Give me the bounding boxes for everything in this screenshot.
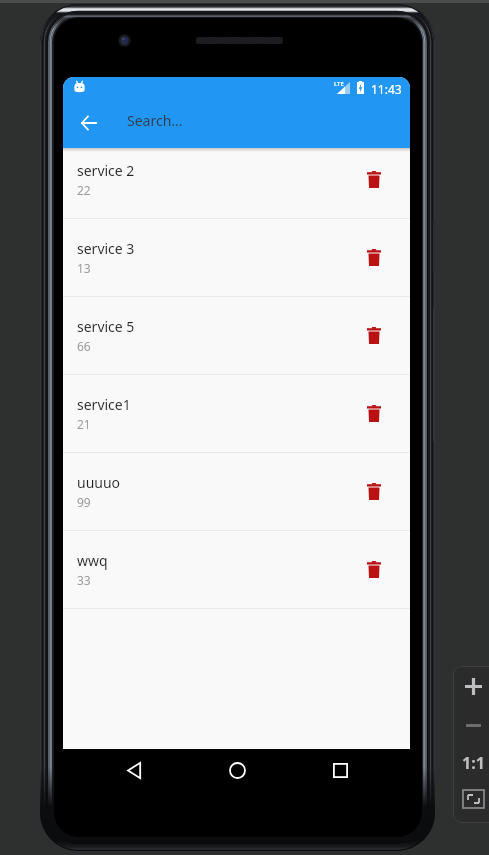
staticText: LTE — [334, 80, 344, 88]
staticText: 33 — [77, 572, 91, 588]
staticText: service 3 — [77, 239, 135, 258]
button[interactable]: Delete — [356, 162, 392, 198]
button[interactable]: Delete — [356, 318, 392, 354]
button[interactable]: Delete — [356, 240, 392, 276]
button[interactable]: wwq — [63, 531, 410, 608]
button[interactable]: Zoom in — [459, 672, 488, 701]
staticText: 13 — [77, 260, 91, 276]
button[interactable]: service 5 — [63, 297, 410, 374]
button[interactable]: Delete — [356, 474, 392, 510]
staticText: Search... — [127, 111, 183, 129]
button[interactable]: service 2 — [63, 148, 410, 218]
button[interactable]: Fit to screen — [459, 784, 488, 813]
button[interactable]: Recent apps — [322, 752, 358, 788]
staticText: 1:1 — [462, 752, 485, 774]
staticText: 11:43 — [371, 81, 402, 97]
button[interactable]: Back — [116, 752, 152, 788]
button[interactable]: Delete — [356, 552, 392, 588]
staticText: wwq — [77, 551, 108, 570]
button[interactable]: uuuuo — [63, 453, 410, 530]
button[interactable]: Delete — [356, 396, 392, 432]
staticText: 66 — [77, 338, 91, 354]
button[interactable]: service 3 — [63, 219, 410, 296]
staticText: service 5 — [77, 317, 135, 336]
button[interactable]: Zoom out — [459, 711, 488, 740]
button[interactable]: Back — [70, 111, 106, 135]
staticText: service1 — [77, 395, 131, 414]
button[interactable]: Search... — [127, 111, 287, 129]
staticText: 22 — [77, 182, 91, 198]
button[interactable]: Actual size — [459, 748, 488, 777]
button[interactable]: service1 — [63, 375, 410, 452]
button[interactable]: Home — [219, 752, 255, 788]
staticText: service 2 — [77, 161, 135, 180]
staticText: 21 — [77, 416, 91, 432]
staticText: uuuuo — [77, 473, 121, 492]
staticText: 99 — [77, 494, 91, 510]
